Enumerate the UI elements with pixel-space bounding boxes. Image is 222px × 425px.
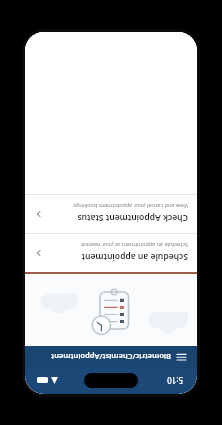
staticText: Biometric/Chemist/Appointment xyxy=(51,352,171,362)
staticText: View and cancel your appointment booking… xyxy=(73,203,188,210)
button[interactable]: Check Appointment Status xyxy=(25,195,197,233)
button[interactable]: Menu xyxy=(173,348,191,366)
staticText: 5:10 xyxy=(167,375,183,386)
staticText: Schedule an appointment xyxy=(81,251,188,263)
staticText: Check Appointment Status xyxy=(77,212,188,224)
staticText: Schedule an appointment at your nearest xyxy=(80,242,188,249)
button[interactable]: Schedule an appointment xyxy=(25,234,197,272)
